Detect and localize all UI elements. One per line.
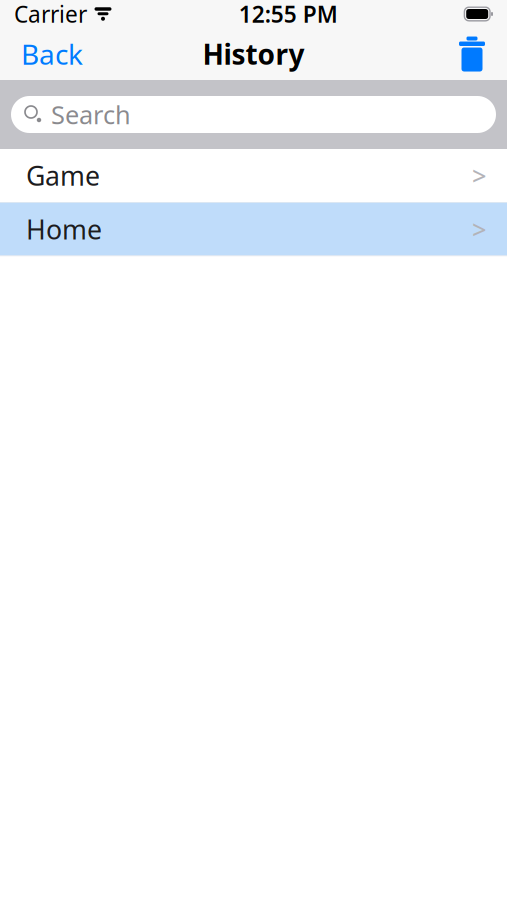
button[interactable]: Back [9,32,95,76]
staticText: 12:55 PM [239,0,338,29]
button[interactable]: Home [0,203,507,256]
staticText: > [472,212,486,246]
staticText: Carrier [14,0,87,29]
staticText: Search [51,98,131,131]
button[interactable]: Search [11,96,496,133]
staticText: Home [26,211,102,247]
staticText: Back [21,35,83,73]
staticText: > [472,159,486,192]
button[interactable]: Game [0,149,507,202]
button[interactable]: Delete history [446,32,498,76]
staticText: History [202,35,304,73]
staticText: Game [26,158,100,193]
